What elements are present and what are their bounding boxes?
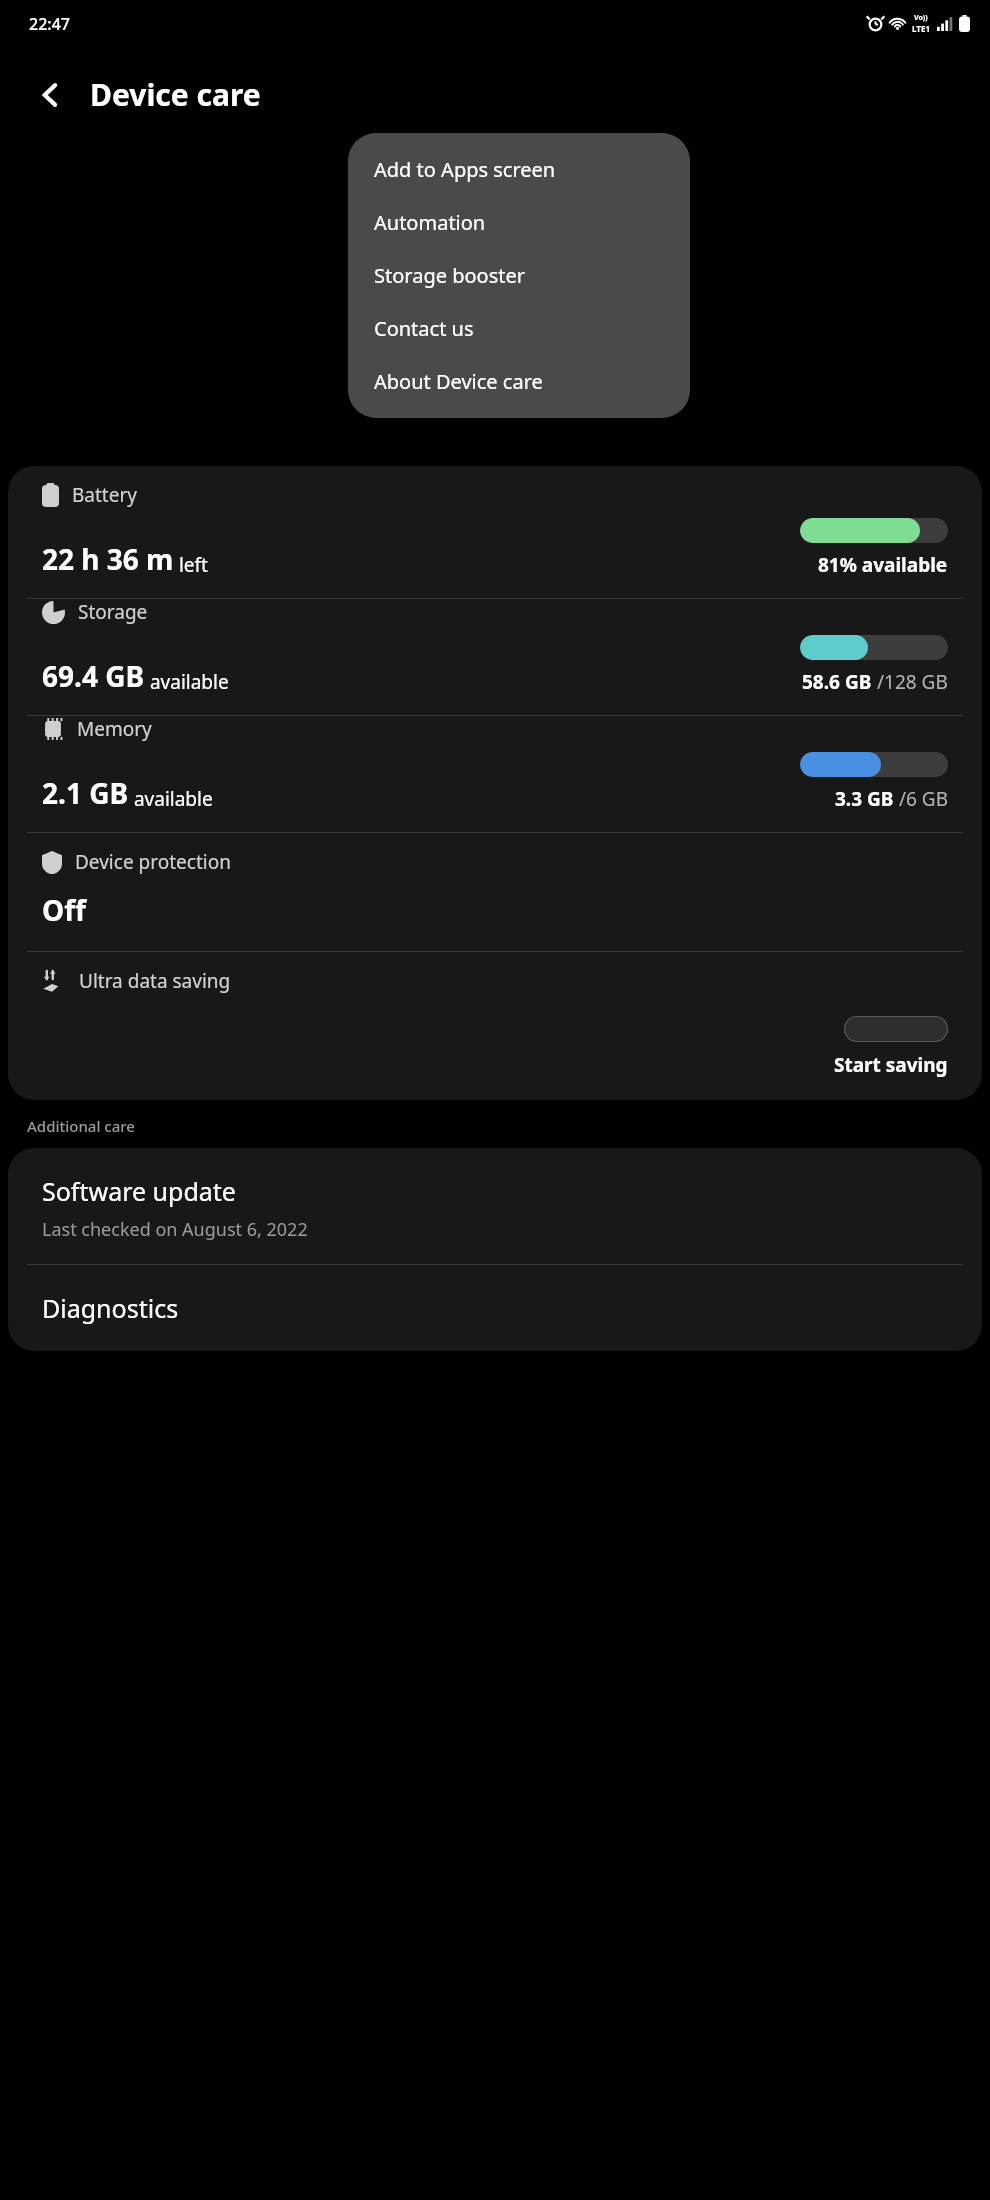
button[interactable]: About Device care bbox=[348, 355, 690, 408]
staticText: available bbox=[145, 669, 229, 695]
button[interactable]: Storage bbox=[8, 599, 982, 715]
staticText: Battery bbox=[72, 482, 137, 508]
button[interactable]: Automation bbox=[348, 196, 690, 249]
staticText: Add to Apps screen bbox=[374, 156, 556, 183]
button[interactable]: Device protection bbox=[8, 833, 982, 951]
staticText: Contact us bbox=[374, 315, 474, 342]
staticText: Device care bbox=[90, 74, 261, 115]
staticText: Vo)) bbox=[914, 13, 928, 23]
staticText: 2.1 GB bbox=[42, 774, 129, 812]
staticText: Great bbox=[434, 309, 557, 369]
staticText: LTE1 bbox=[912, 23, 930, 34]
staticText: /128 GB bbox=[872, 669, 948, 695]
staticText: Diagnostics bbox=[42, 1291, 179, 1325]
button[interactable]: Diagnostics bbox=[8, 1265, 982, 1351]
button[interactable]: Ultra data saving bbox=[8, 952, 982, 1100]
staticText: available bbox=[129, 786, 213, 812]
button[interactable]: Software update bbox=[8, 1148, 982, 1264]
button[interactable]: Add to Apps screen bbox=[348, 143, 690, 196]
staticText: 58.6 GB bbox=[802, 669, 872, 695]
button[interactable]: Memory bbox=[8, 716, 982, 832]
button[interactable]: Contact us bbox=[348, 302, 690, 355]
staticText: Off bbox=[42, 891, 86, 929]
staticText: 22:47 bbox=[29, 13, 70, 35]
staticText: Software update bbox=[42, 1174, 236, 1208]
staticText: Last checked on August 6, 2022 bbox=[42, 1217, 308, 1242]
staticText: 69.4 GB bbox=[42, 657, 145, 695]
staticText: Device protection bbox=[75, 849, 231, 875]
staticText: Ultra data saving bbox=[79, 968, 231, 994]
staticText: Storage bbox=[78, 599, 148, 625]
button[interactable]: Battery bbox=[8, 482, 982, 598]
staticText: Storage booster bbox=[374, 262, 525, 289]
staticText: Start saving bbox=[834, 1052, 948, 1078]
staticText: /6 GB bbox=[894, 786, 948, 812]
button[interactable]: Storage booster bbox=[348, 249, 690, 302]
staticText: left bbox=[174, 552, 208, 578]
staticText: Automation bbox=[374, 209, 486, 236]
staticText: 81% available bbox=[818, 552, 948, 578]
button[interactable]: Back bbox=[22, 66, 80, 124]
staticText: About Device care bbox=[374, 368, 543, 395]
staticText: Memory bbox=[77, 716, 152, 742]
staticText: 22 h 36 m bbox=[42, 540, 174, 578]
staticText: Additional care bbox=[27, 1116, 135, 1136]
staticText: 3.3 GB bbox=[835, 786, 894, 812]
